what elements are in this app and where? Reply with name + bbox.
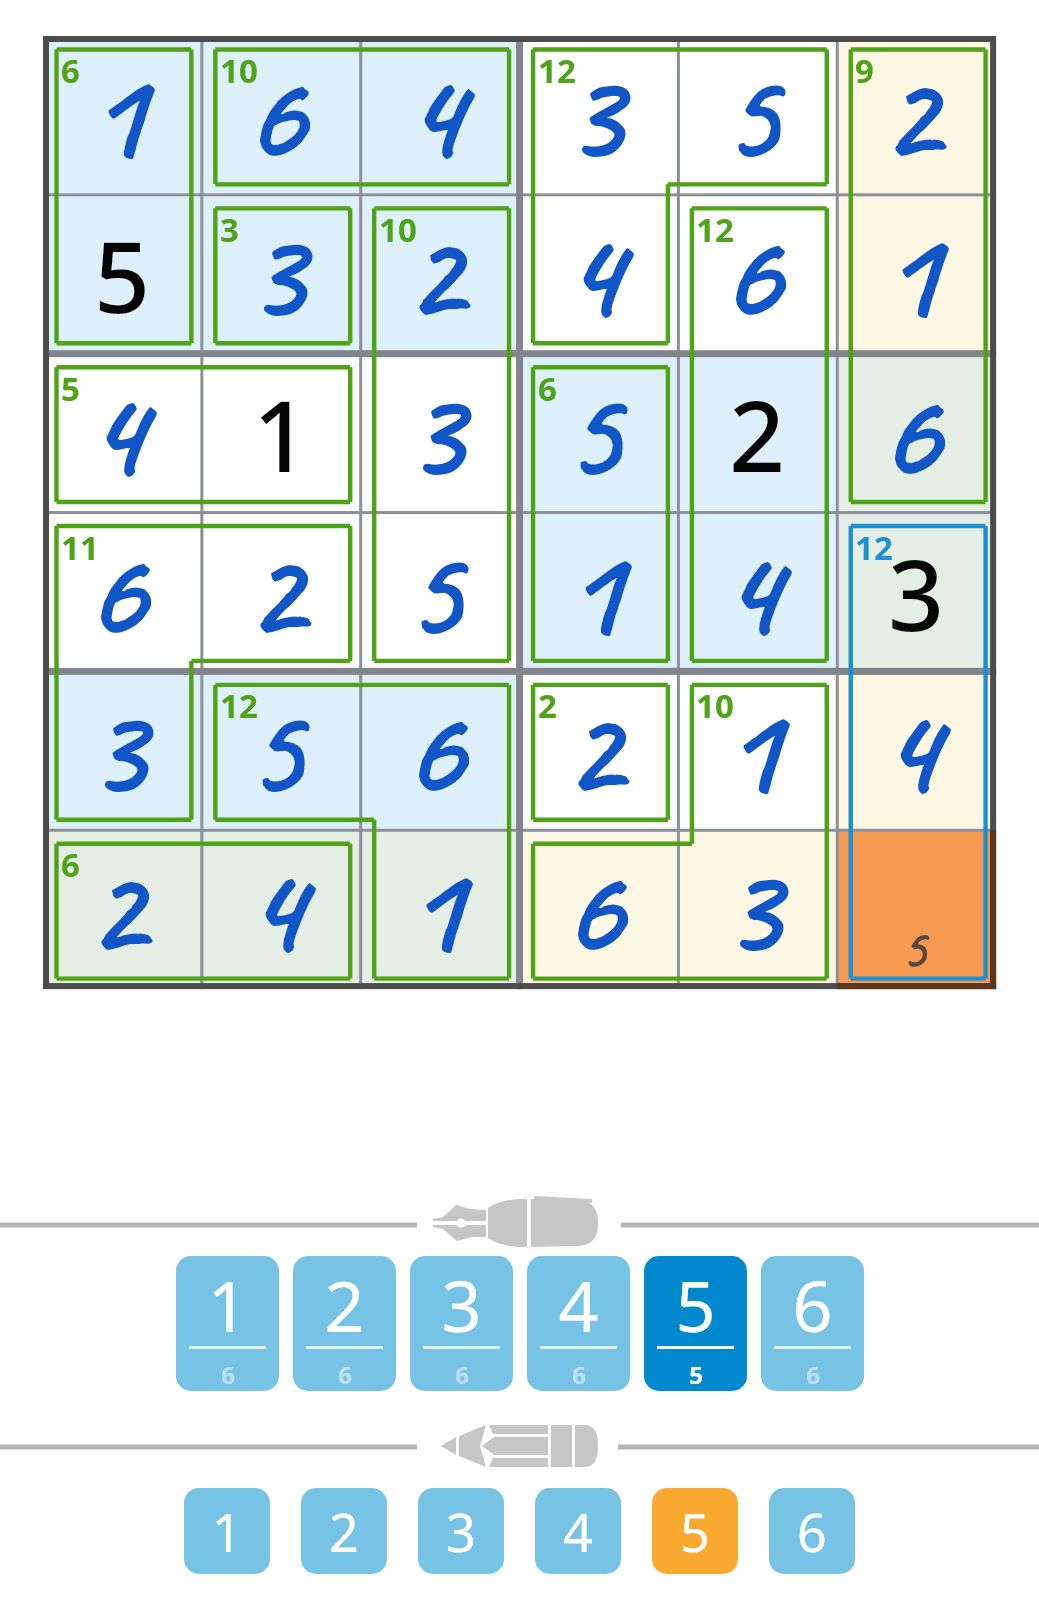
button[interactable]: 1 xyxy=(520,513,679,672)
staticText: 5 xyxy=(721,35,778,196)
staticText: 3 xyxy=(888,526,945,659)
staticText: 3 xyxy=(245,194,303,355)
button[interactable]: 4 xyxy=(202,830,361,989)
staticText: 6 xyxy=(221,1358,235,1391)
staticText: 4 xyxy=(245,829,303,990)
button[interactable]: 3 xyxy=(202,195,361,354)
staticText: 4 xyxy=(880,670,938,831)
staticText: 5 xyxy=(245,670,302,831)
staticText: 2 xyxy=(563,670,621,831)
staticText: 1 xyxy=(721,670,779,831)
button[interactable]: 2 xyxy=(43,830,202,989)
button[interactable]: 5 xyxy=(678,36,837,195)
button[interactable]: 6 xyxy=(361,671,520,830)
button[interactable]: 6 xyxy=(202,36,361,195)
staticText: 2 xyxy=(880,35,938,196)
button[interactable]: 2 xyxy=(678,354,837,513)
button[interactable]: 3 xyxy=(361,354,520,513)
staticText: 1 xyxy=(563,512,621,673)
staticText: 4 xyxy=(404,35,462,196)
button[interactable]: 3 xyxy=(410,1256,513,1391)
button[interactable]: 6 xyxy=(678,195,837,354)
staticText: 2 xyxy=(86,829,144,990)
button[interactable]: 1 xyxy=(361,830,520,989)
staticText: 5 xyxy=(61,366,80,411)
button[interactable]: 4 xyxy=(535,1488,621,1574)
button[interactable]: 5 xyxy=(644,1256,747,1391)
staticText: 2 xyxy=(324,1257,365,1352)
staticText: 11 xyxy=(61,525,99,570)
button[interactable]: 3 xyxy=(837,513,996,672)
staticText: 5 xyxy=(901,913,926,984)
staticText: 2 xyxy=(729,367,786,500)
staticText: 2 xyxy=(245,512,303,673)
staticText: 10 xyxy=(379,207,417,252)
button[interactable]: 1 xyxy=(202,354,361,513)
staticText: 3 xyxy=(86,670,144,831)
button[interactable]: 4 xyxy=(520,195,679,354)
button[interactable]: 6 xyxy=(43,513,202,672)
staticText: 3 xyxy=(404,353,462,514)
button[interactable]: 2 xyxy=(293,1256,396,1391)
staticText: 6 xyxy=(61,48,80,93)
button[interactable]: 5 xyxy=(202,671,361,830)
button[interactable]: 1 xyxy=(678,671,837,830)
staticText: 2 xyxy=(404,194,462,355)
staticText: 3 xyxy=(446,1496,476,1567)
staticText: 5 xyxy=(563,353,620,514)
staticText: 2 xyxy=(538,683,557,728)
staticText: 5 xyxy=(404,512,461,673)
staticText: 1 xyxy=(880,194,938,355)
button[interactable]: 5 xyxy=(837,830,996,989)
button[interactable]: 2 xyxy=(361,195,520,354)
button[interactable]: 4 xyxy=(361,36,520,195)
button[interactable]: 6 xyxy=(761,1256,864,1391)
button[interactable]: 2 xyxy=(837,36,996,195)
staticText: 6 xyxy=(878,353,939,514)
staticText: 1 xyxy=(404,829,462,990)
staticText: 6 xyxy=(719,194,780,355)
button[interactable]: 6 xyxy=(837,354,996,513)
button[interactable]: 1 xyxy=(837,195,996,354)
button[interactable]: 4 xyxy=(43,354,202,513)
staticText: 6 xyxy=(338,1358,352,1391)
button[interactable]: 4 xyxy=(527,1256,630,1391)
button[interactable]: 5 xyxy=(361,513,520,672)
button[interactable]: 2 xyxy=(301,1488,387,1574)
button[interactable]: 4 xyxy=(837,671,996,830)
staticText: 3 xyxy=(220,207,239,252)
button[interactable]: 3 xyxy=(418,1488,504,1574)
button[interactable]: 5 xyxy=(43,195,202,354)
staticText: 6 xyxy=(806,1358,820,1391)
staticText: 5 xyxy=(680,1496,710,1567)
staticText: 5 xyxy=(94,208,151,341)
staticText: 10 xyxy=(696,683,734,728)
staticText: 12 xyxy=(696,207,734,252)
button[interactable]: 2 xyxy=(520,671,679,830)
button[interactable]: 1 xyxy=(184,1488,270,1574)
staticText: 1 xyxy=(86,35,144,196)
button[interactable]: 5 xyxy=(652,1488,738,1574)
staticText: 1 xyxy=(212,1496,242,1567)
staticText: 5 xyxy=(675,1257,716,1352)
button[interactable]: 1 xyxy=(43,36,202,195)
button[interactable]: 2 xyxy=(202,513,361,672)
button[interactable]: 3 xyxy=(520,36,679,195)
staticText: 6 xyxy=(243,35,304,196)
staticText: 12 xyxy=(538,48,576,93)
button[interactable]: 4 xyxy=(678,513,837,672)
staticText: 12 xyxy=(855,525,893,570)
button[interactable]: 3 xyxy=(43,671,202,830)
staticText: 6 xyxy=(538,366,557,411)
button[interactable]: 3 xyxy=(678,830,837,989)
staticText: 1 xyxy=(253,367,310,500)
staticText: 6 xyxy=(792,1257,833,1352)
button[interactable]: 6 xyxy=(769,1488,855,1574)
staticText: 3 xyxy=(721,829,779,990)
button[interactable]: 5 xyxy=(520,354,679,513)
button[interactable]: 1 xyxy=(176,1256,279,1391)
staticText: 2 xyxy=(329,1496,359,1567)
staticText: 6 xyxy=(561,829,622,990)
staticText: 5 xyxy=(689,1358,703,1391)
button[interactable]: 6 xyxy=(520,830,679,989)
